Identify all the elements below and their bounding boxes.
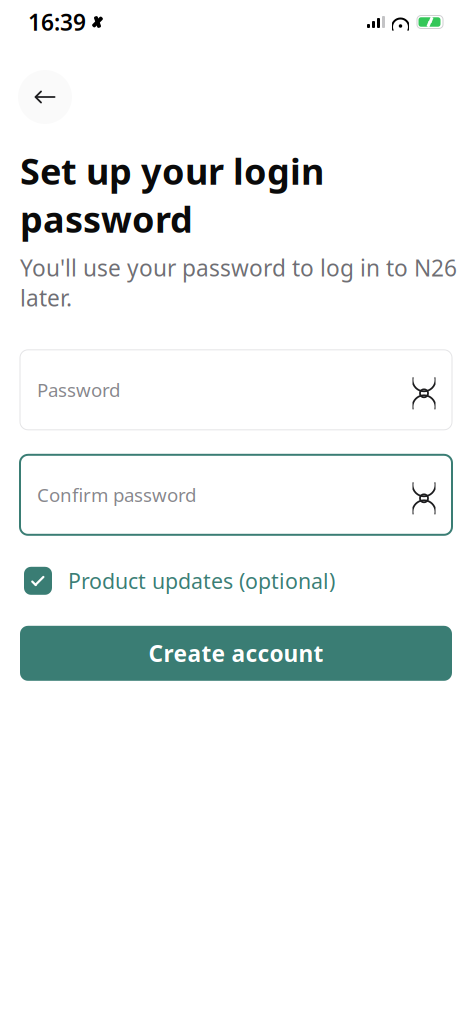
staticText: Product updates (optional) xyxy=(68,567,335,595)
staticText: 16:39 xyxy=(28,7,86,37)
button[interactable]: Create account xyxy=(20,626,452,681)
staticText: Confirm password xyxy=(37,482,196,507)
button[interactable]: Show Confirm password xyxy=(402,473,446,517)
button[interactable]: Product updates (optional) xyxy=(0,559,472,603)
staticText: Password xyxy=(37,377,120,402)
staticText: You'll use your password to log in to N2… xyxy=(20,253,457,313)
staticText: Create account xyxy=(148,638,323,668)
button[interactable]: Show Password xyxy=(402,368,446,412)
button[interactable]: Back xyxy=(18,70,72,124)
staticText: Set up your login password xyxy=(20,147,324,243)
